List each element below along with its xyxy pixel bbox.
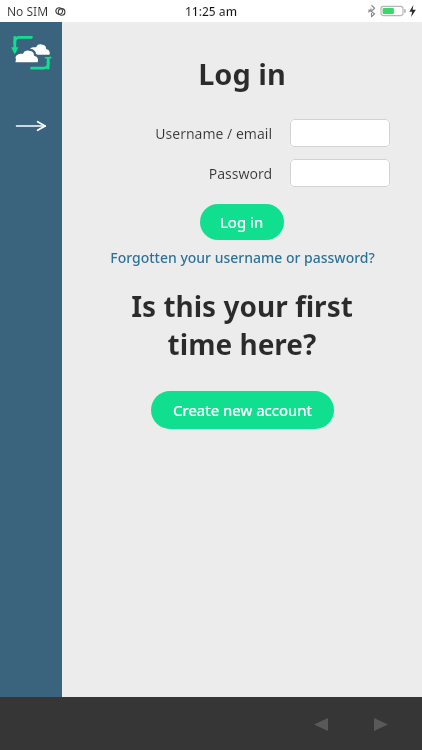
button[interactable]: Username / email [290,119,390,147]
staticText: Create new account [173,400,312,420]
button[interactable]: Open navigation [8,106,54,146]
staticText: Password [208,164,272,183]
button[interactable]: Back [298,704,344,744]
button[interactable]: Moodle logo [7,29,56,78]
button[interactable]: Log in [200,204,284,240]
staticText: Forgotten your username or password? [110,248,375,267]
button[interactable]: Create new account [151,391,334,429]
button[interactable]: Forward [358,704,404,744]
staticText: Is this your first time here? [74,287,410,363]
staticText: 11:25 am [185,3,238,19]
staticText: No SIM [7,3,49,19]
button[interactable]: Password [290,159,390,187]
staticText: Username / email [155,124,272,143]
staticText: Log in [220,212,264,232]
button[interactable]: Forgotten your username or password? [102,246,383,269]
staticText: Log in [198,54,286,93]
